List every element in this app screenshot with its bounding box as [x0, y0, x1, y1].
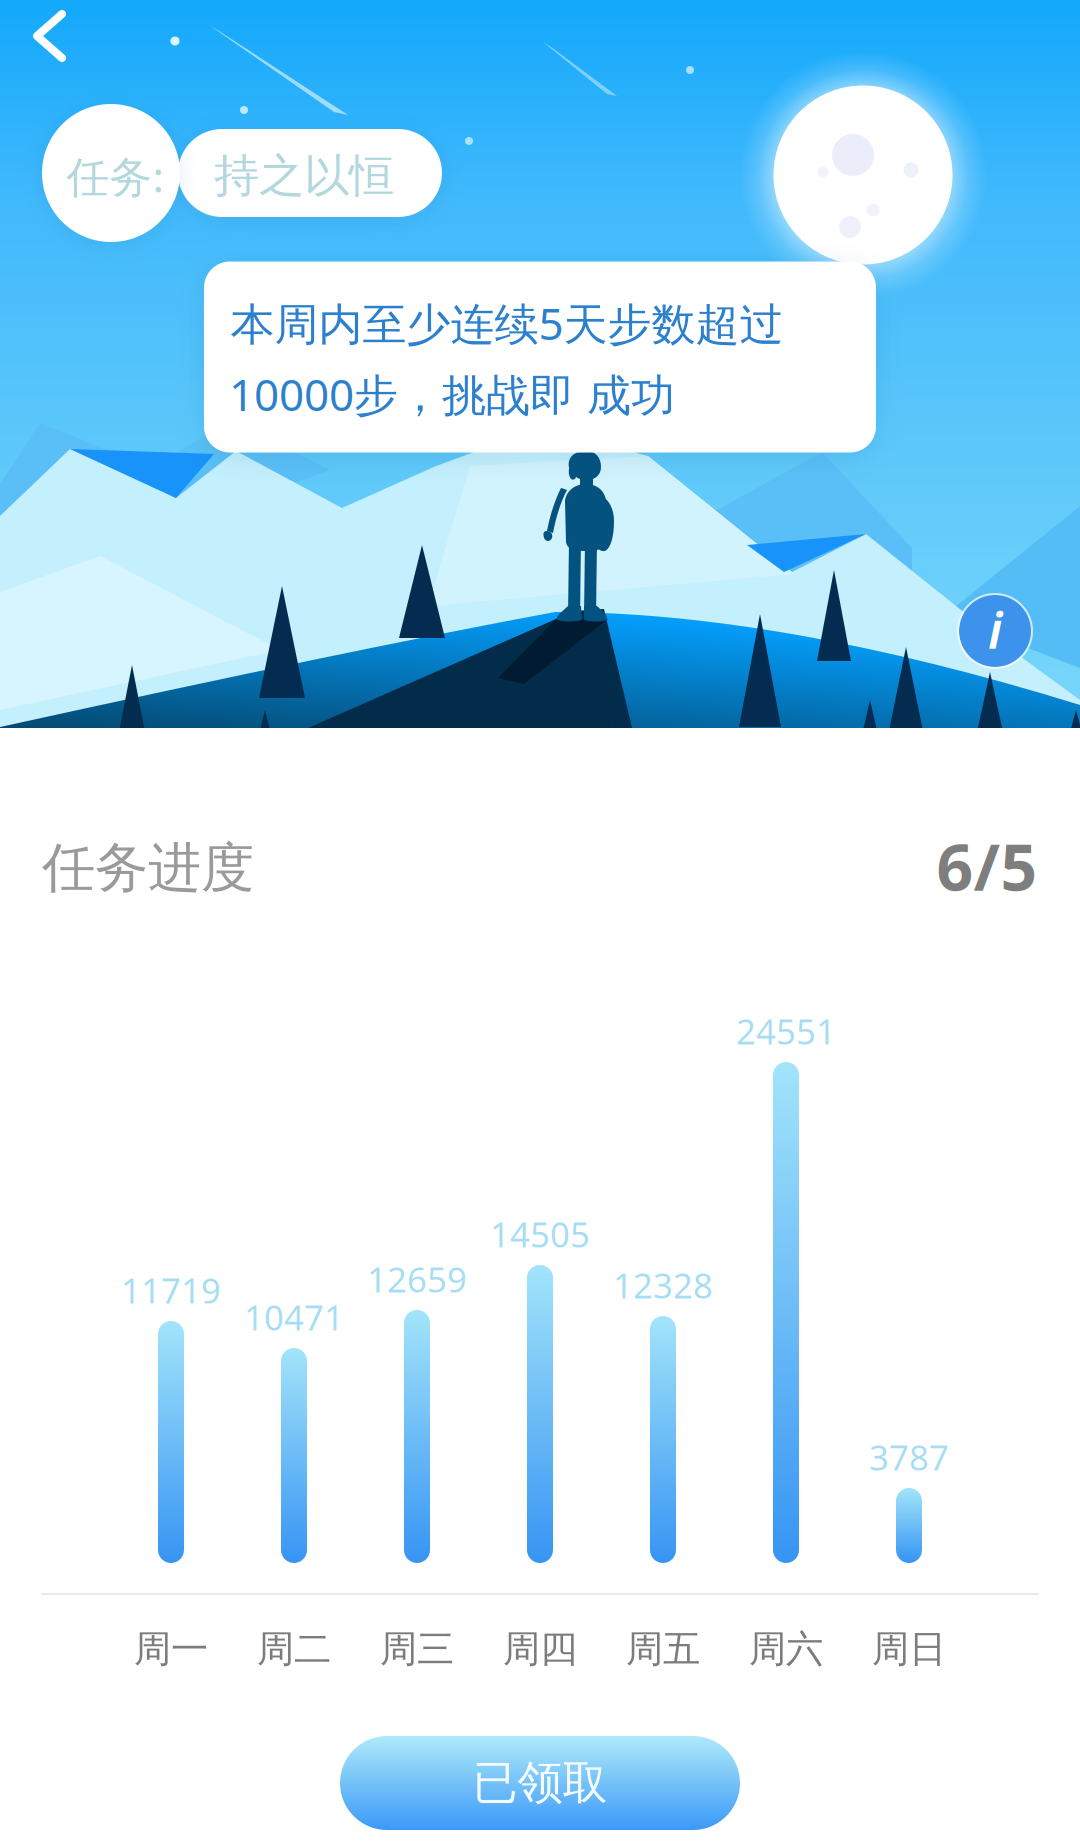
- staticText: 周一: [134, 1626, 208, 1672]
- staticText: 12328: [613, 1262, 713, 1308]
- staticText: i: [988, 595, 1002, 663]
- staticText: 14505: [490, 1211, 590, 1257]
- button[interactable]: 已领取: [340, 1736, 740, 1830]
- staticText: 周二: [257, 1626, 331, 1672]
- staticText: 已领取: [472, 1755, 607, 1811]
- button[interactable]: 返回: [0, 0, 120, 96]
- staticText: 24551: [736, 1008, 836, 1054]
- staticText: 本周内至少连续5天步数超过: [230, 294, 783, 352]
- staticText: 周六: [749, 1626, 823, 1672]
- button[interactable]: 说明: [956, 592, 1034, 670]
- staticText: 周日: [872, 1626, 946, 1672]
- staticText: 10000步，挑战即 成功: [229, 365, 675, 423]
- staticText: 周三: [380, 1626, 454, 1672]
- staticText: 周五: [626, 1626, 700, 1672]
- staticText: 任务:: [66, 148, 163, 204]
- staticText: 6/5: [936, 823, 1037, 908]
- staticText: 11719: [121, 1267, 221, 1313]
- staticText: 12659: [367, 1256, 467, 1302]
- staticText: 周四: [503, 1626, 577, 1672]
- staticText: 3787: [869, 1434, 949, 1480]
- staticText: 任务进度: [42, 835, 254, 901]
- staticText: 10471: [244, 1294, 344, 1340]
- staticText: 持之以恒: [214, 148, 394, 204]
